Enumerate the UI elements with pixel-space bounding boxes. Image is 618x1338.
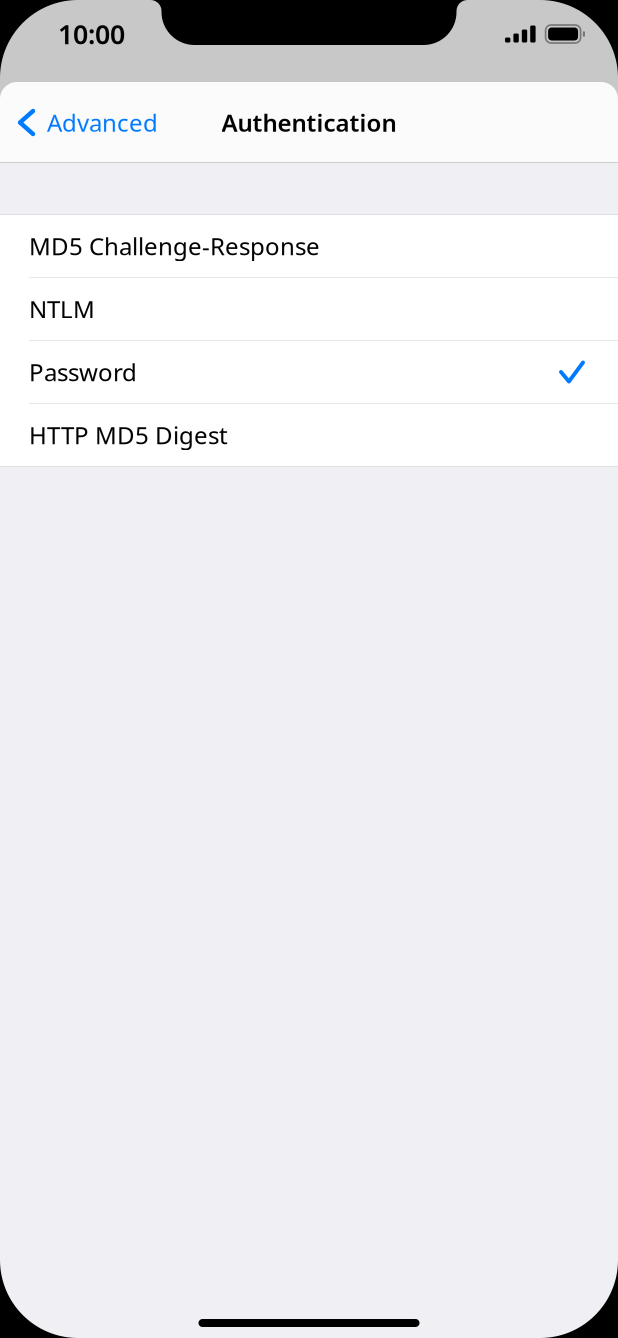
- staticText: Authentication: [221, 107, 396, 138]
- button[interactable]: HTTP MD5 Digest: [0, 404, 618, 466]
- button[interactable]: MD5 Challenge-Response: [0, 215, 618, 278]
- button[interactable]: NTLM: [0, 278, 618, 341]
- staticText: NTLM: [29, 293, 95, 325]
- staticText: 10:00: [58, 16, 125, 52]
- staticText: HTTP MD5 Digest: [29, 419, 228, 451]
- staticText: Password: [29, 356, 137, 388]
- button[interactable]: Password: [0, 341, 618, 404]
- staticText: MD5 Challenge-Response: [29, 230, 320, 262]
- button[interactable]: Advanced: [0, 95, 166, 150]
- staticText: Advanced: [47, 107, 158, 138]
